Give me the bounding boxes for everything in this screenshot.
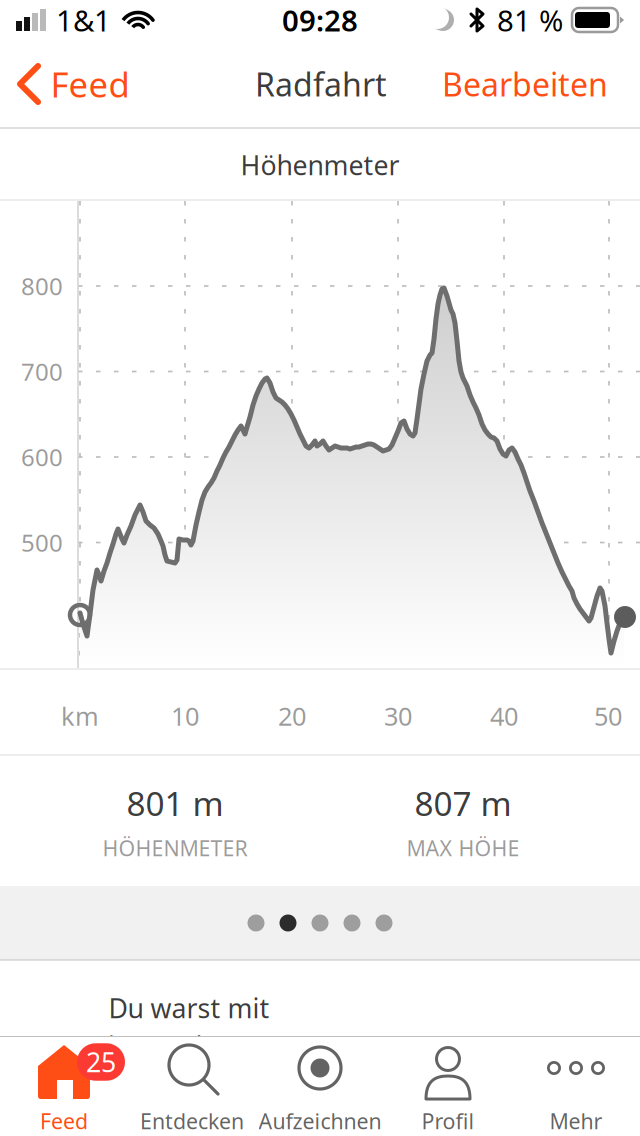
staticText: jemandem	[108, 1028, 242, 1064]
staticText: MAX HÖHE	[406, 834, 519, 862]
staticText: 600	[21, 441, 63, 473]
staticText: Bearbeiten	[442, 63, 608, 105]
staticText: 30	[384, 699, 412, 733]
staticText: 800	[21, 270, 63, 302]
staticText: km	[61, 699, 99, 733]
button[interactable]: Aufzeichnen	[256, 1037, 384, 1136]
staticText: 10	[171, 699, 199, 733]
staticText: Du warst mit	[108, 990, 269, 1026]
staticText: 50	[594, 699, 622, 733]
staticText: Feed	[50, 61, 129, 107]
staticText: 40	[490, 699, 518, 733]
staticText: 81 %	[497, 0, 563, 39]
button[interactable]: Entdecken	[128, 1037, 256, 1136]
staticText: 25	[86, 1044, 116, 1080]
staticText: Profil	[421, 1107, 474, 1135]
staticText: 807 m	[414, 781, 511, 825]
staticText: Höhenmeter	[240, 147, 399, 183]
staticText: HÖHENMETER	[102, 834, 247, 862]
staticText: 09:28	[282, 0, 358, 39]
staticText: Radfahrt	[255, 63, 387, 105]
staticText: Feed	[40, 1107, 88, 1135]
staticText: Mehr	[549, 1107, 602, 1135]
button[interactable]: Mehr	[512, 1037, 640, 1136]
staticText: 20	[278, 699, 306, 733]
button[interactable]: Profil	[384, 1037, 512, 1136]
button[interactable]: Feed	[0, 40, 126, 128]
button[interactable]: Bearbeiten	[427, 40, 623, 128]
button[interactable]: Feed	[0, 1037, 128, 1136]
staticText: Entdecken	[140, 1107, 244, 1135]
staticText: 1&1	[56, 0, 111, 39]
staticText: 500	[21, 527, 63, 558]
staticText: 801 m	[126, 781, 223, 825]
staticText: 700	[21, 356, 63, 387]
staticText: Aufzeichnen	[258, 1107, 381, 1135]
